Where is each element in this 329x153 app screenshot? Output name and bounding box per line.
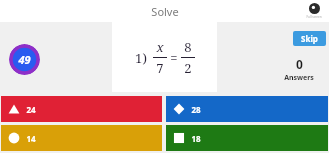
button[interactable]: 49 [9,44,40,75]
staticText: 0 [296,56,303,72]
staticText: 28 [191,104,201,115]
staticText: = [170,49,178,67]
staticText: 14 [26,133,36,144]
staticText: Answers [284,73,314,83]
button[interactable]: 28 [166,96,328,122]
button[interactable]: 24 [1,96,162,122]
staticText: 2 [184,59,192,77]
staticText: Solve [151,4,179,19]
button[interactable]: Skip [293,31,326,46]
staticText: Skip [301,33,318,44]
staticText: Full screen [306,15,322,19]
button[interactable]: Full screen [305,2,323,20]
button[interactable]: 14 [1,125,162,151]
staticText: 1) [135,49,147,67]
staticText: 18 [191,133,201,144]
staticText: 24 [26,104,36,115]
staticText: 7 [156,59,164,77]
staticText: 49 [18,52,31,67]
button[interactable]: 18 [166,125,328,151]
staticText: 8 [184,38,192,56]
staticText: x [156,38,164,56]
